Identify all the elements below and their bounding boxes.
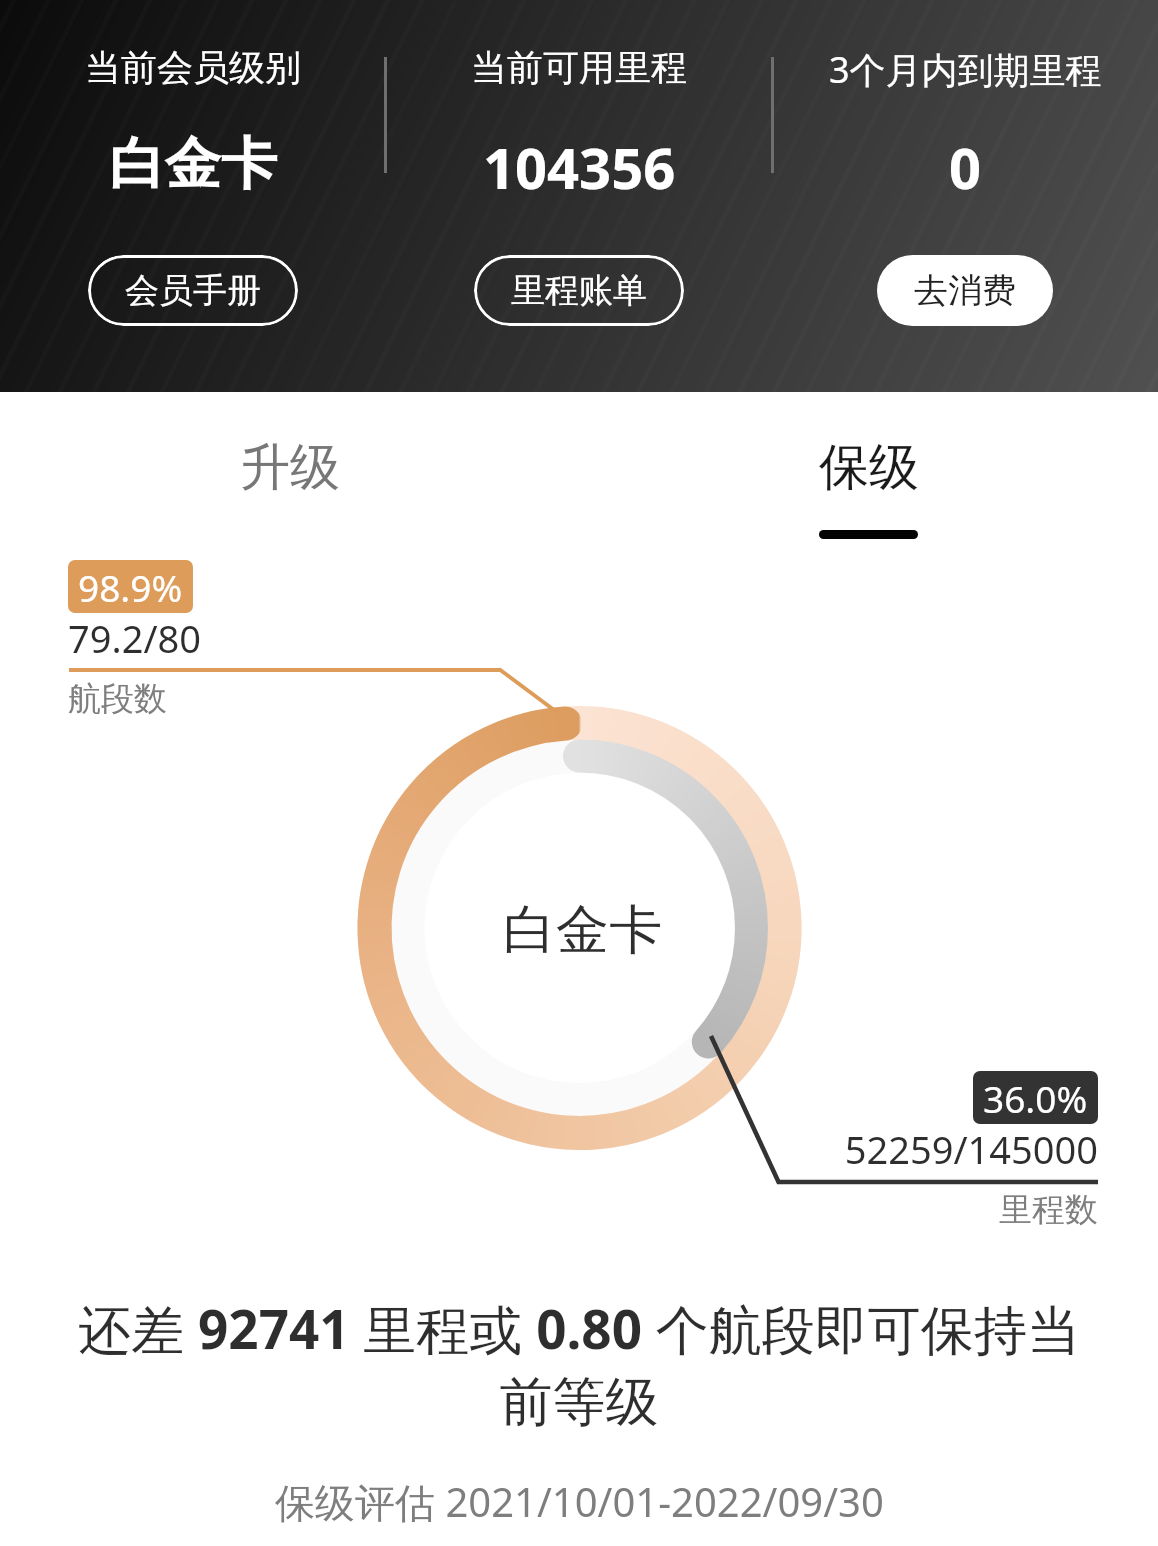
staticText: 0 (949, 129, 982, 205)
other: 等级进度环 白金卡 (0, 0, 1158, 1546)
staticText: 104356 (483, 129, 676, 205)
staticText: 3个月内到期里程 (829, 45, 1102, 94)
staticText: 98.9% (78, 562, 183, 612)
staticText: 79.2/80 (68, 612, 202, 664)
staticText: 升级 (240, 436, 340, 499)
staticText: 去消费 (914, 269, 1016, 312)
button[interactable]: 里程账单 (474, 255, 684, 326)
button[interactable]: 保级 (579, 392, 1158, 552)
staticText: 保级评估 2021/10/01-2022/09/30 (275, 1474, 884, 1529)
staticText: 白金卡 (503, 897, 662, 964)
staticText: 白金卡 (109, 129, 277, 200)
staticText: 里程账单 (511, 269, 647, 312)
button[interactable]: 去消费 (877, 255, 1053, 326)
staticText: 当前会员级别 (85, 45, 301, 90)
staticText: 36.0% (983, 1073, 1088, 1123)
button[interactable]: 升级 (0, 392, 579, 552)
button[interactable]: 会员手册 (88, 255, 298, 326)
staticText: 当前可用里程 (471, 45, 687, 90)
staticText: 52259/145000 (598, 1123, 1098, 1175)
staticText: 里程数 (598, 1189, 1098, 1231)
staticText: 会员手册 (125, 269, 261, 312)
staticText: 航段数 (68, 678, 167, 720)
staticText: 保级 (819, 436, 919, 499)
staticText: 还差 92741 里程或 0.80 个航段即可保持当前等级 (70, 1292, 1088, 1436)
